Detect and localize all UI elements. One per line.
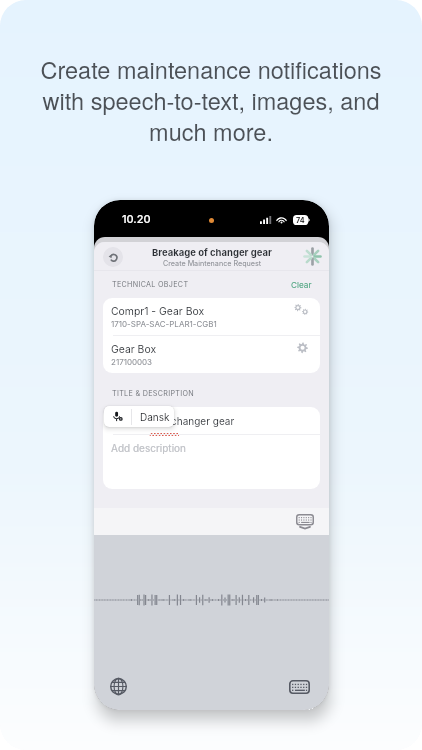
button[interactable]: Keyboard bbox=[289, 680, 310, 694]
staticText: TECHNICAL OBJECT bbox=[112, 280, 189, 289]
button[interactable]: Change language bbox=[110, 678, 127, 695]
staticText: Dansk bbox=[140, 411, 170, 423]
staticText: 217100003 bbox=[111, 357, 153, 367]
staticText: 10.20 bbox=[122, 212, 151, 225]
staticText: Create maintenance notifications with sp… bbox=[12, 52, 410, 148]
staticText: TITLE & DESCRIPTION bbox=[112, 389, 194, 398]
staticText: Gear Box bbox=[111, 343, 157, 356]
button[interactable]: Hide keyboard bbox=[296, 514, 314, 529]
button[interactable]: Back bbox=[103, 247, 123, 267]
staticText: Create Maintenance Request bbox=[163, 259, 262, 268]
button[interactable]: Dansk bbox=[104, 406, 174, 427]
button[interactable]: Clear bbox=[291, 280, 312, 290]
staticText: Breakage of changer gear bbox=[152, 247, 272, 258]
staticText: 74 bbox=[296, 216, 305, 225]
staticText: Breakage of changer gear bbox=[111, 415, 235, 427]
button[interactable]: Loading bbox=[304, 248, 321, 265]
button[interactable]: Compr1 - Gear Box bbox=[103, 298, 320, 335]
button[interactable]: Gear Box bbox=[103, 336, 320, 373]
staticText: 1710-SPA-SAC-PLAR1-CGB1 bbox=[111, 319, 217, 329]
staticText: Compr1 - Gear Box bbox=[111, 305, 205, 318]
staticText: Add description bbox=[111, 442, 186, 454]
